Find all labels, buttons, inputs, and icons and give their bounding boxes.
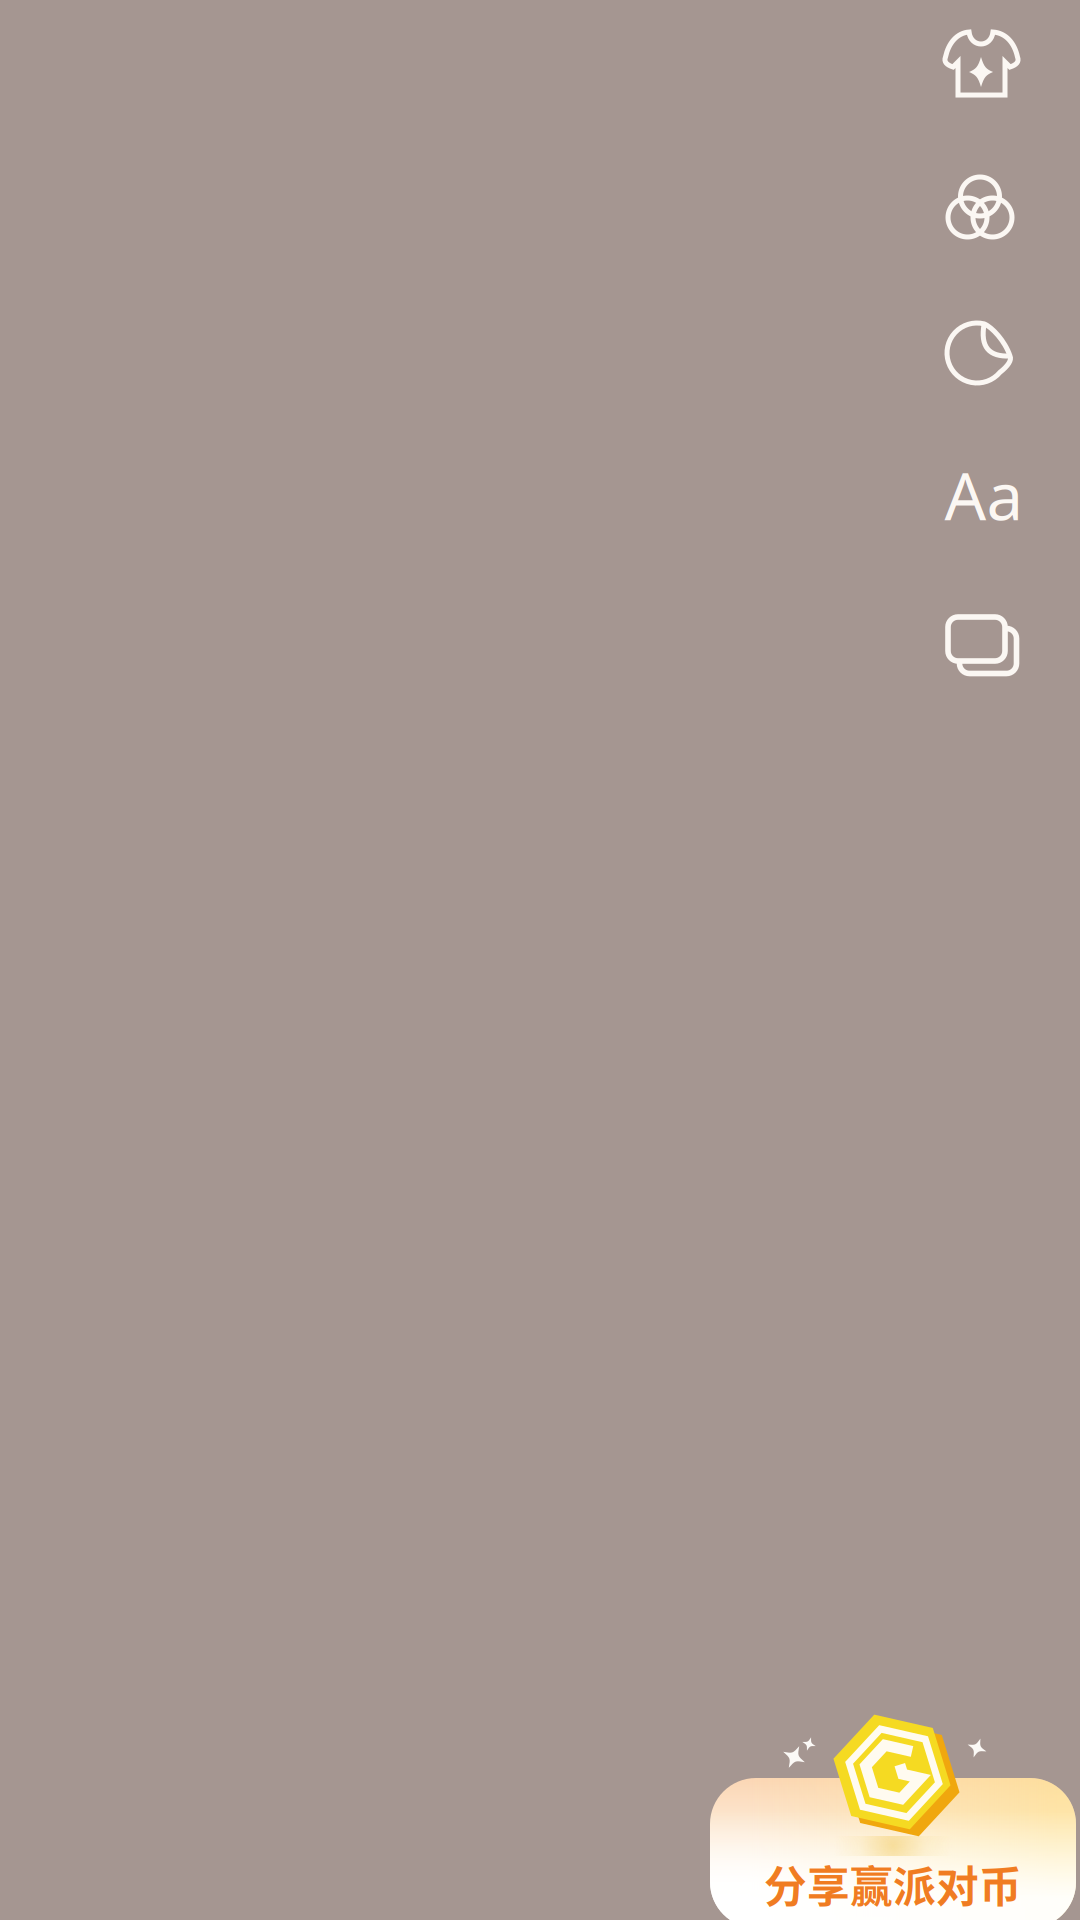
staticText: 分享赢派对币	[764, 1853, 1022, 1915]
button[interactable]: Outfit	[941, 24, 1021, 104]
button[interactable]: 分享赢派对币	[710, 1778, 1076, 1920]
button[interactable]: Templates	[942, 605, 1022, 685]
staticText: Aa	[944, 452, 1023, 538]
button[interactable]: Filters	[940, 167, 1020, 247]
button[interactable]: Text	[929, 455, 1039, 535]
button[interactable]: Stickers	[942, 313, 1022, 393]
